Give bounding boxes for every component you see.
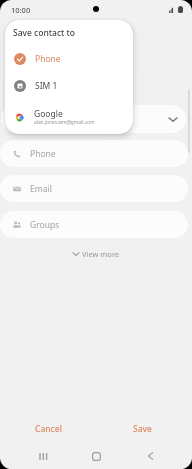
button[interactable]: Save — [111, 417, 173, 441]
button[interactable]: SIM 1 — [5, 75, 133, 97]
staticText: View more — [82, 249, 120, 259]
button[interactable]: Phone — [0, 140, 188, 167]
button[interactable]: Google — [5, 106, 133, 128]
staticText: Email — [30, 183, 52, 195]
staticText: Save contact to — [13, 27, 76, 39]
staticText: Save — [133, 423, 152, 435]
staticText: 10:00 — [11, 5, 31, 15]
button[interactable]: Back — [134, 440, 166, 469]
staticText: Phone — [35, 53, 61, 65]
staticText: Phone — [30, 148, 56, 160]
button[interactable]: Recent apps — [27, 440, 59, 469]
button[interactable]: View more — [67, 245, 126, 263]
staticText: SIM 1 — [35, 80, 58, 92]
staticText: Cancel — [35, 423, 62, 435]
button[interactable]: Phone — [5, 48, 133, 70]
staticText: Groups — [30, 219, 60, 231]
staticText: Google — [34, 108, 63, 120]
button[interactable] — [1, 105, 186, 133]
button[interactable]: Cancel — [17, 417, 79, 441]
staticText: alan.jones.wm@gmail.com — [34, 119, 95, 126]
button[interactable]: Home — [80, 440, 112, 469]
button[interactable]: Email — [0, 175, 188, 202]
button[interactable]: Groups — [0, 211, 188, 238]
